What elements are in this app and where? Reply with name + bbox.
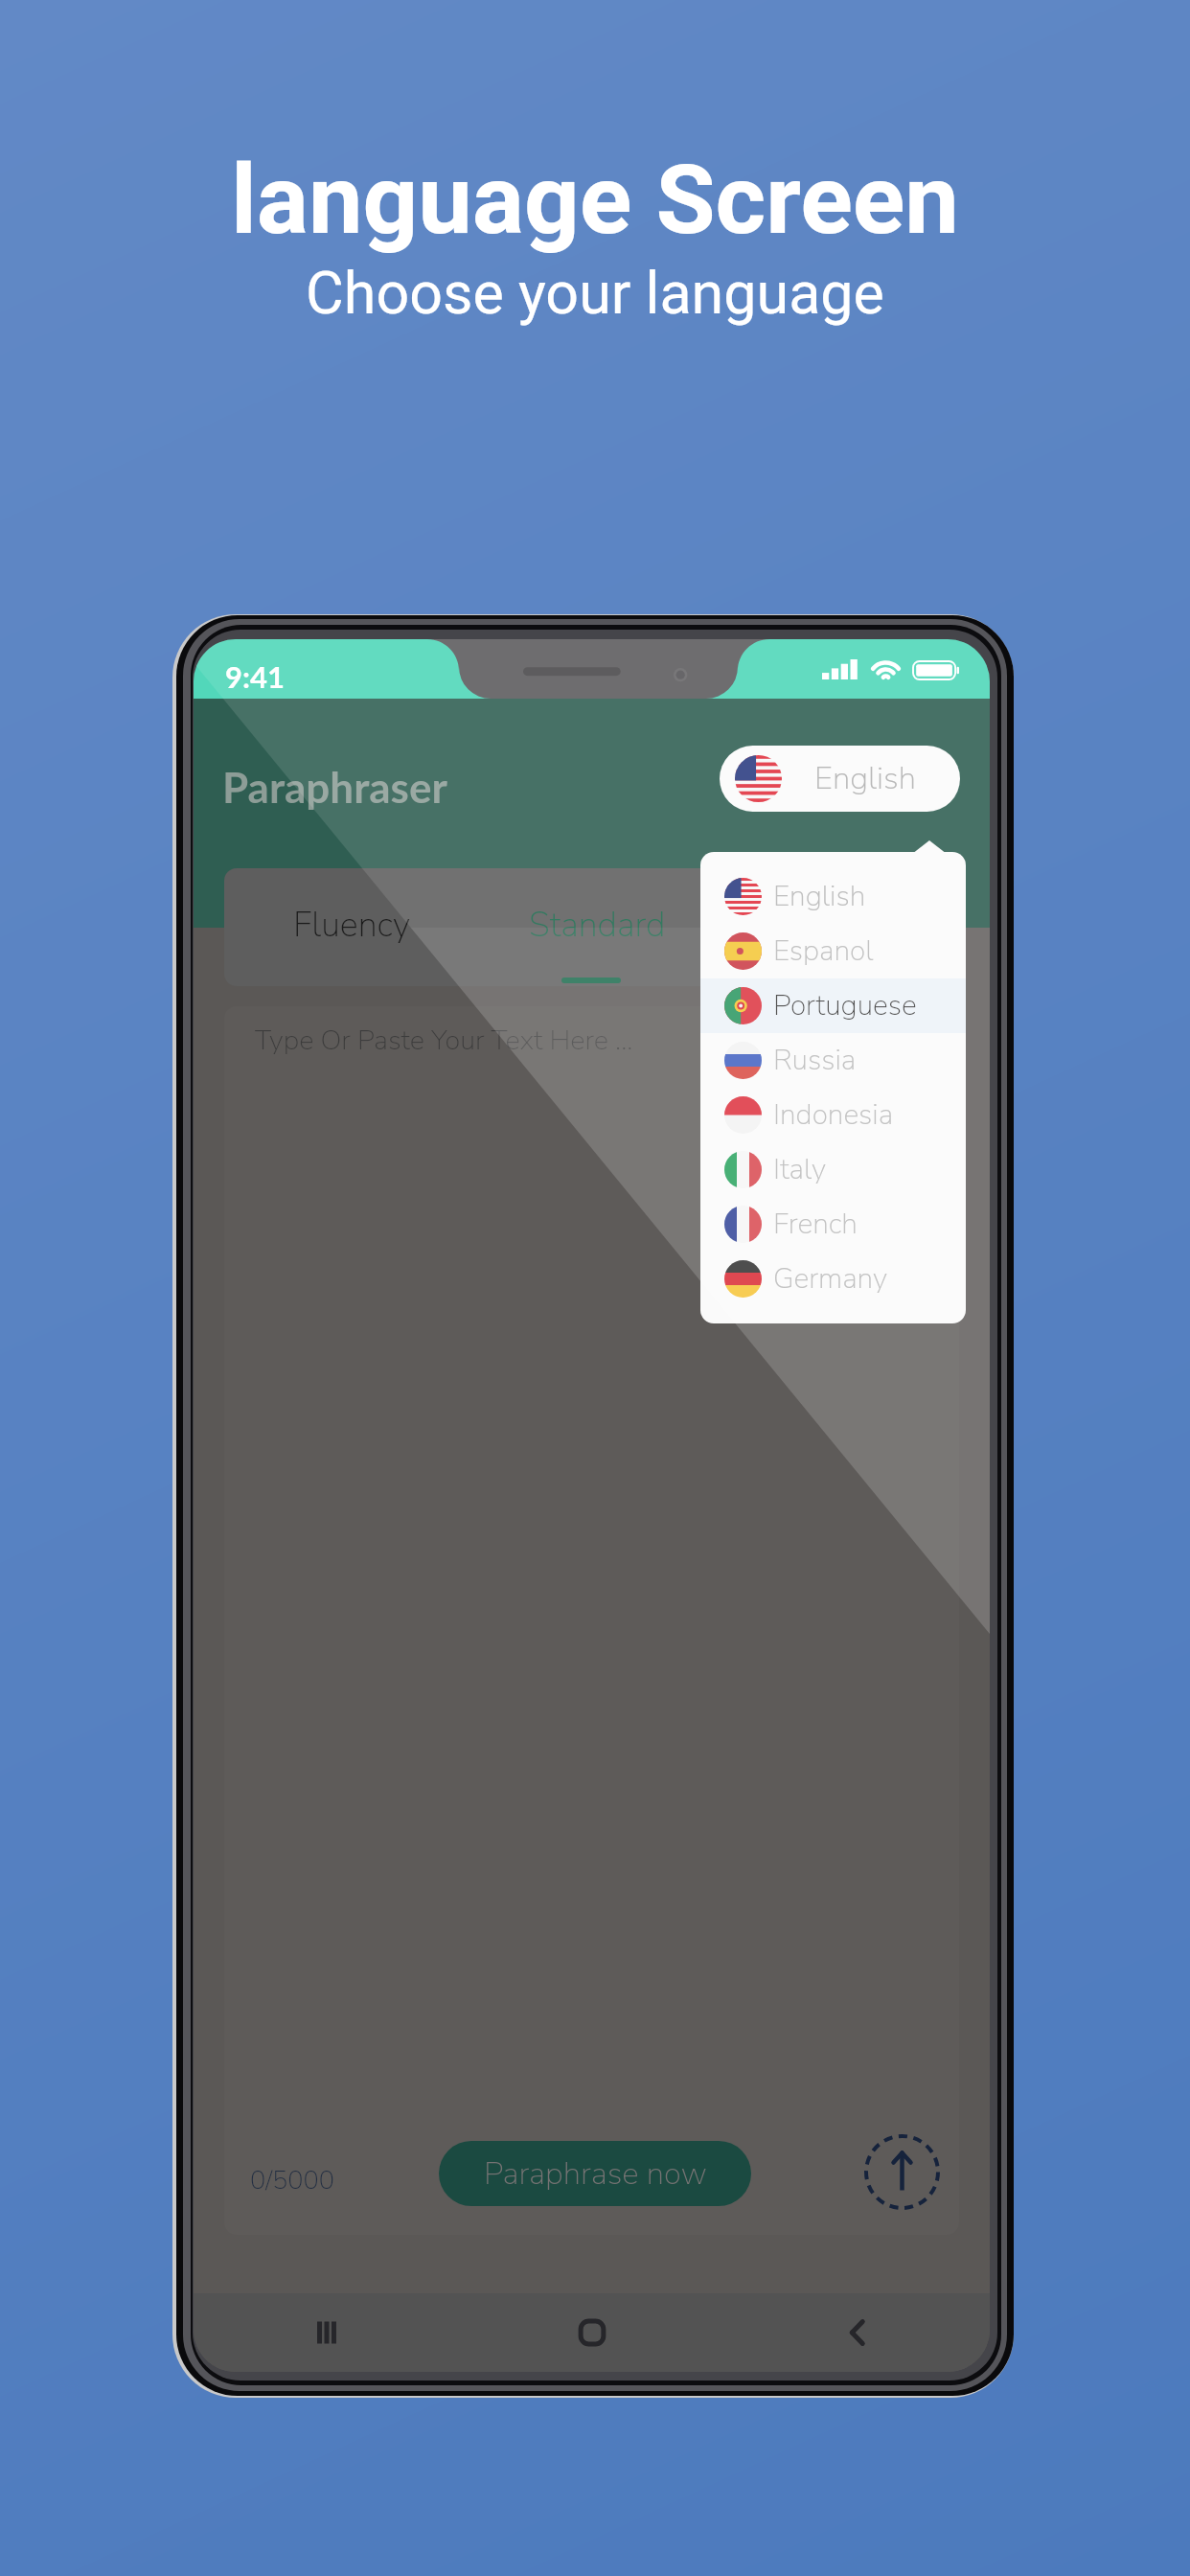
button[interactable]: Portuguese (700, 978, 966, 1033)
button[interactable]: Paraphrase now (439, 2141, 751, 2206)
staticText: Type Or Paste Your Text Here ... (255, 1022, 633, 1060)
staticText: French (773, 1205, 858, 1244)
staticText: Paraphraser (222, 762, 447, 813)
button[interactable]: English (720, 746, 960, 812)
staticText: Indonesia (773, 1095, 894, 1135)
staticText: English (773, 877, 866, 916)
button[interactable]: Fluency (224, 868, 469, 986)
button[interactable]: Germany (700, 1252, 966, 1306)
staticText: language Screen (231, 143, 959, 256)
button[interactable]: Creative (714, 868, 959, 986)
button[interactable]: English (700, 869, 966, 924)
staticText: Choose your language (306, 259, 884, 327)
button[interactable]: Indonesia (700, 1088, 966, 1142)
button[interactable]: Italy (700, 1142, 966, 1197)
staticText: Italy (773, 1150, 827, 1189)
staticText: Fluency (293, 902, 411, 949)
button[interactable]: Russia (700, 1033, 966, 1088)
staticText: Espanol (773, 931, 874, 971)
staticText: Russia (773, 1041, 857, 1080)
button[interactable]: Standard (469, 868, 714, 986)
staticText: Paraphrase now (484, 2152, 707, 2196)
button[interactable]: Home (459, 2293, 724, 2372)
staticText: Portuguese (773, 986, 917, 1025)
button[interactable]: Back (724, 2293, 990, 2372)
staticText: English (782, 757, 949, 800)
button[interactable]: Upload text (864, 2134, 940, 2210)
staticText: Germany (773, 1259, 888, 1299)
staticText: 9:41 (225, 658, 285, 694)
button[interactable]: French (700, 1197, 966, 1252)
staticText: 0/5000 (250, 2163, 334, 2198)
button[interactable]: Espanol (700, 924, 966, 978)
staticText: Standard (529, 902, 666, 949)
staticText: Creative (781, 902, 904, 949)
button[interactable]: Recents (194, 2293, 459, 2372)
